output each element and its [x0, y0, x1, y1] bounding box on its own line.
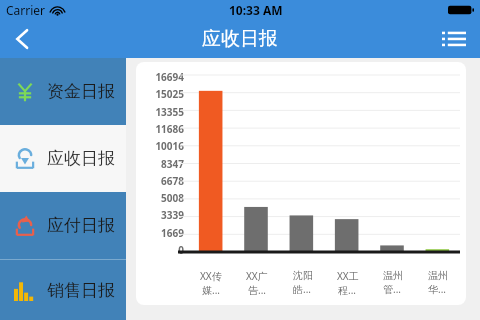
staticText: 6678 — [161, 174, 184, 188]
staticText: Carrier — [6, 2, 46, 18]
staticText: XX传 — [200, 269, 222, 283]
staticText: 1669 — [161, 226, 184, 240]
button[interactable]: 应收日报 — [0, 125, 126, 192]
staticText: 应收日报 — [47, 148, 115, 169]
button[interactable]: 销售日报 — [0, 260, 126, 320]
staticText: 0 — [178, 243, 184, 257]
staticText: XX工 — [337, 269, 359, 283]
button[interactable]: 资金日报 — [0, 58, 126, 125]
staticText: 程... — [338, 283, 357, 297]
button[interactable]: Back — [0, 20, 44, 58]
staticText: 应收日报 — [202, 27, 278, 51]
staticText: 华... — [428, 282, 447, 296]
staticText: 16694 — [155, 70, 184, 84]
staticText: 管... — [383, 282, 402, 296]
staticText: 销售日报 — [47, 280, 115, 301]
staticText: 3339 — [161, 208, 184, 222]
staticText: 15025 — [155, 87, 184, 101]
staticText: 资金日报 — [47, 81, 115, 102]
staticText: 告... — [248, 283, 267, 297]
staticText: 11686 — [155, 122, 184, 136]
staticText: 温州 — [428, 269, 448, 282]
staticText: XX广 — [246, 269, 268, 283]
staticText: 10:33 AM — [229, 2, 283, 18]
staticText: 10016 — [155, 139, 184, 153]
staticText: 媒... — [202, 283, 221, 297]
staticText: 5008 — [161, 191, 184, 205]
staticText: 皓... — [293, 282, 312, 296]
staticText: 应付日报 — [47, 215, 115, 236]
staticText: 13355 — [155, 105, 184, 119]
staticText: 8347 — [161, 157, 184, 171]
staticText: 沈阳 — [293, 269, 313, 282]
button[interactable]: 应付日报 — [0, 192, 126, 259]
button[interactable]: Menu — [428, 20, 480, 58]
staticText: 温州 — [383, 269, 403, 282]
